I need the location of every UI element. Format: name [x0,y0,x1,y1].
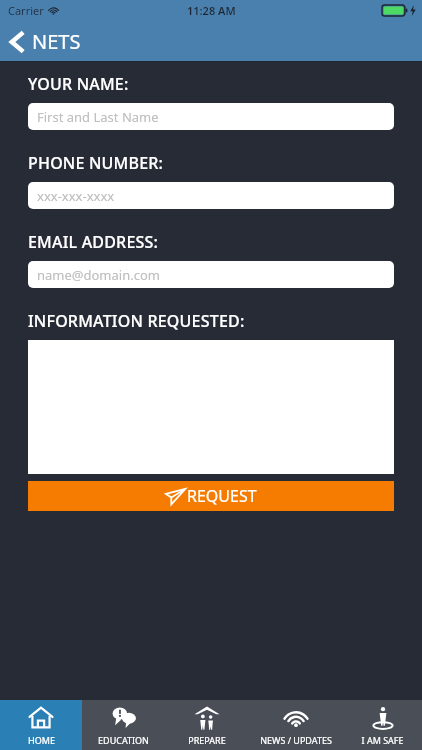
button[interactable]: name@domain.com [28,261,394,288]
button[interactable]: Education [82,700,165,750]
staticText: EMAIL ADDRESS: [28,231,159,253]
staticText: PHONE NUMBER: [28,152,164,174]
other: News and Updates [283,705,309,731]
staticText: 11:28 AM [187,3,236,18]
button[interactable]: I am safe [343,700,422,750]
other: Home [28,705,54,731]
other: I am safe [370,705,396,731]
staticText: NEWS / UPDATES [260,734,332,746]
staticText: HOME [28,734,55,746]
button[interactable]: Home [0,700,82,750]
staticText: YOUR NAME: [28,73,129,95]
button[interactable]: News and Updates [248,700,343,750]
staticText: EDUCATION [98,734,149,746]
button[interactable]: First and Last Name [28,103,394,130]
other: Prepare [194,705,220,731]
button[interactable]: Prepare [165,700,248,750]
button[interactable]: xxx-xxx-xxxx [28,182,394,209]
other: Education [111,705,137,731]
staticText: xxx-xxx-xxxx [37,187,115,205]
staticText: I AM SAFE [361,734,404,746]
staticText: First and Last Name [37,108,159,126]
button[interactable]: REQUEST [28,481,394,511]
other: Back [10,30,25,54]
staticText: REQUEST [187,485,257,507]
staticText: name@domain.com [37,266,160,284]
staticText: INFORMATION REQUESTED: [28,310,245,332]
button[interactable]: Back [0,24,93,59]
staticText: NETS [32,28,81,55]
staticText: PREPARE [188,734,226,746]
staticText: Carrier [8,3,44,18]
